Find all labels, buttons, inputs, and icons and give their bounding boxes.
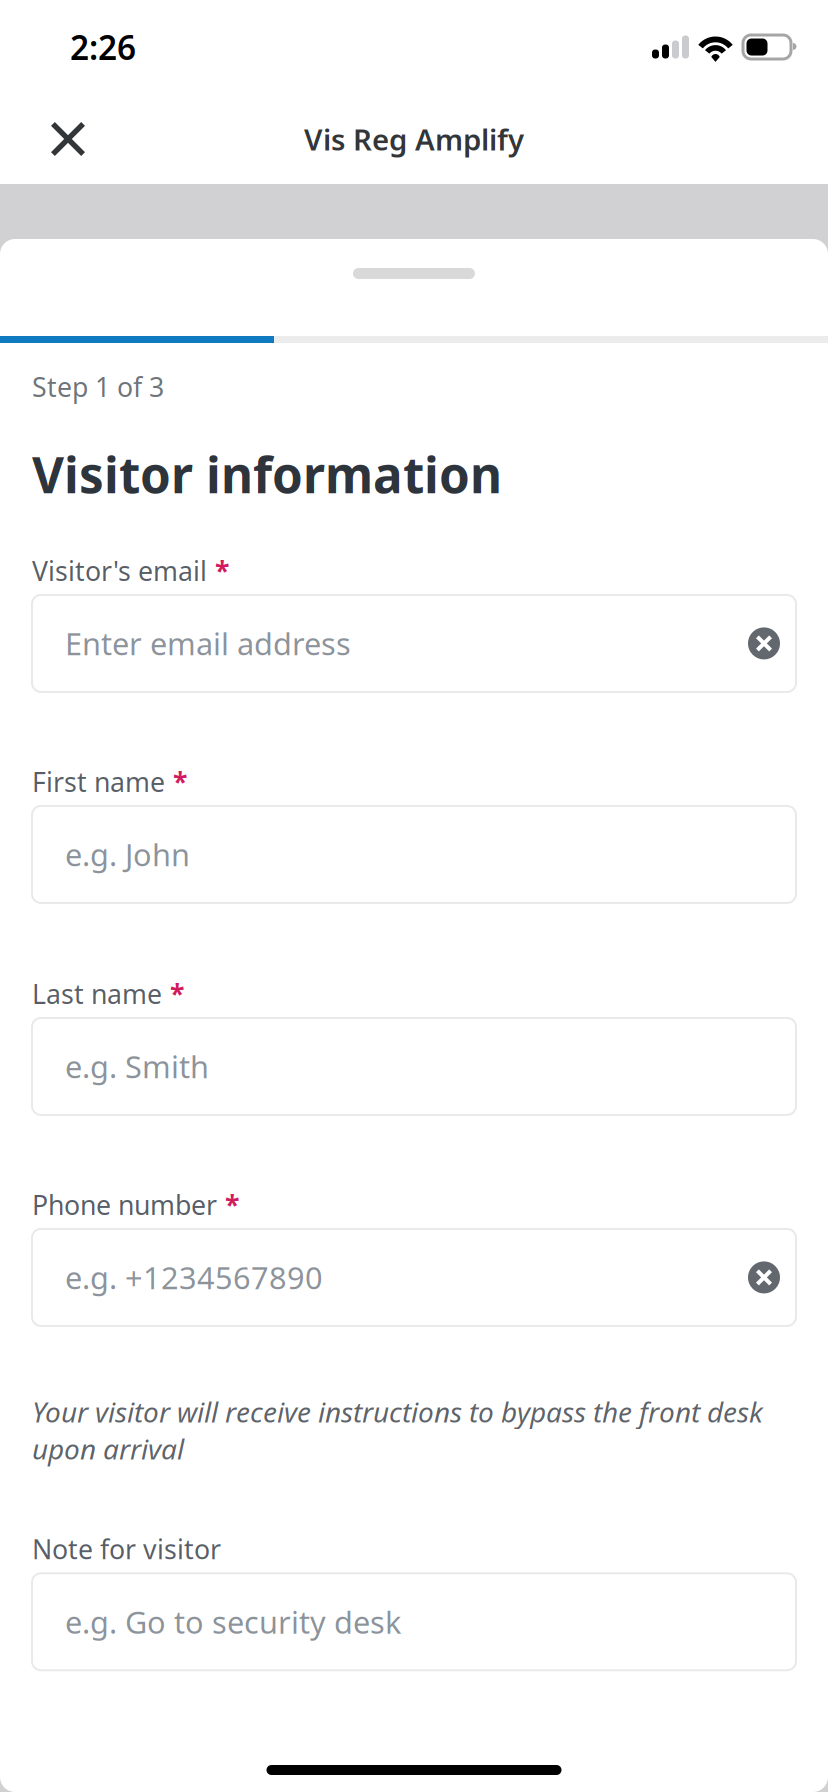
- staticText: Vis Reg Amplify: [304, 119, 524, 158]
- staticText: e.g. John: [65, 834, 190, 875]
- button[interactable]: e.g. Go to security desk: [32, 1573, 796, 1670]
- staticText: 2:26: [70, 25, 136, 69]
- staticText: First name: [32, 764, 165, 799]
- button[interactable]: e.g. +1234567890: [32, 1229, 796, 1326]
- button[interactable]: e.g. John: [32, 806, 796, 903]
- button[interactable]: Close: [31, 102, 105, 176]
- staticText: e.g. Go to security desk: [65, 1601, 401, 1642]
- staticText: Your visitor will receive instructions t…: [32, 1393, 763, 1467]
- staticText: *: [215, 553, 229, 588]
- staticText: Step 1 of 3: [32, 369, 164, 404]
- staticText: Enter email address: [65, 623, 351, 664]
- staticText: e.g. Smith: [65, 1046, 209, 1087]
- staticText: Note for visitor: [32, 1531, 221, 1567]
- staticText: Phone number: [32, 1187, 217, 1222]
- staticText: Visitor information: [32, 441, 502, 507]
- staticText: *: [225, 1187, 239, 1222]
- staticText: e.g. +1234567890: [65, 1257, 323, 1298]
- staticText: Last name: [32, 976, 162, 1011]
- staticText: *: [173, 764, 187, 799]
- button[interactable]: e.g. Smith: [32, 1018, 796, 1115]
- staticText: *: [170, 976, 184, 1011]
- staticText: Visitor's email: [32, 553, 207, 588]
- button[interactable]: Enter email address: [32, 595, 796, 692]
